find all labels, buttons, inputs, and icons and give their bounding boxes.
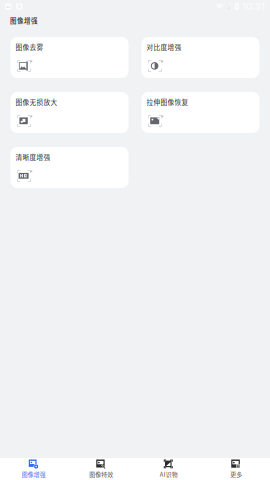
- button[interactable]: AI识物: [135, 458, 202, 480]
- staticText: 图像增强: [10, 16, 38, 25]
- button[interactable]: 图像无损放大: [10, 92, 128, 133]
- button[interactable]: 对比度增强: [141, 37, 259, 78]
- staticText: 图像特效: [89, 470, 113, 478]
- staticText: AI识物: [160, 470, 178, 478]
- staticText: 清晰度增强: [15, 152, 50, 162]
- staticText: 图像增强: [22, 470, 46, 478]
- staticText: 对比度增强: [146, 42, 181, 52]
- button[interactable]: 拉伸图像恢复: [141, 92, 259, 133]
- staticText: 拉伸图像恢复: [146, 97, 188, 107]
- button[interactable]: 图像特效: [67, 458, 135, 480]
- staticText: 更多: [230, 470, 242, 478]
- button[interactable]: 图像增强: [0, 458, 67, 480]
- staticText: 图像去雾: [15, 42, 43, 52]
- button[interactable]: 图像去雾: [10, 37, 128, 78]
- button[interactable]: 更多: [202, 458, 270, 480]
- staticText: 图像无损放大: [15, 97, 57, 107]
- button[interactable]: 清晰度增强: [10, 147, 128, 188]
